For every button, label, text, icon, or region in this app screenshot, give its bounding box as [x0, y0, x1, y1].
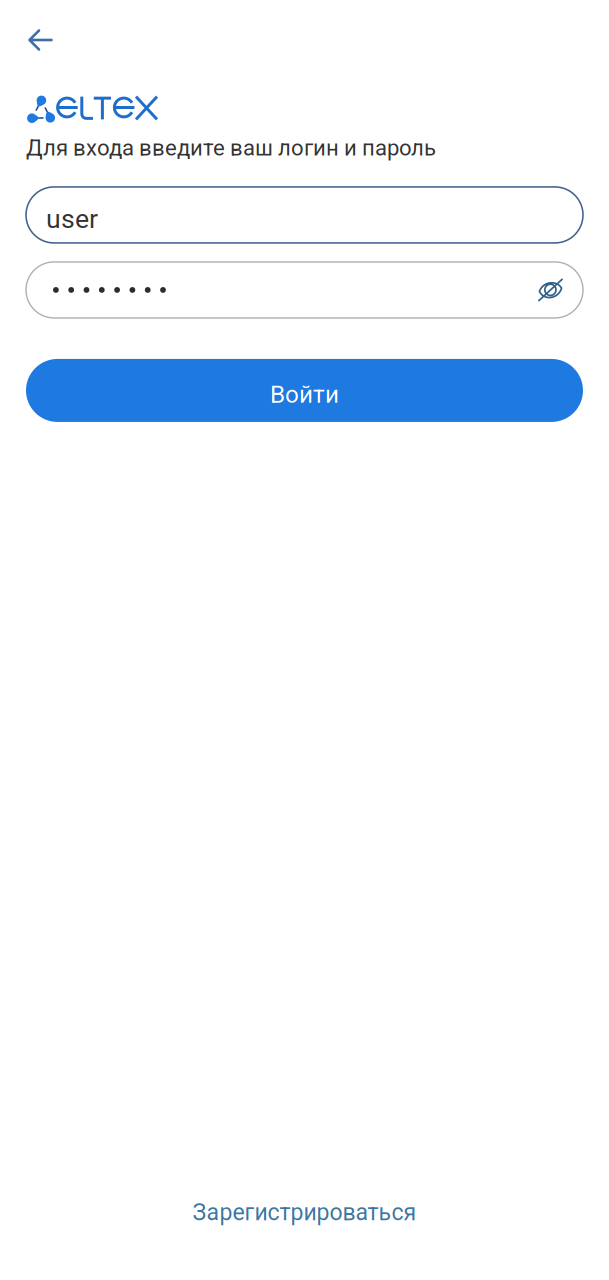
staticText: Зарегистрироваться: [192, 1199, 416, 1226]
button[interactable]: Back: [0, 0, 75, 65]
button[interactable]: Войти: [26, 359, 583, 422]
staticText: Для входа введите ваш логин и пароль: [26, 135, 436, 161]
button[interactable]: Show password: [538, 278, 563, 301]
button[interactable]: Зарегистрироваться: [0, 1187, 609, 1238]
staticText: user: [46, 203, 98, 235]
staticText: Войти: [270, 380, 339, 409]
